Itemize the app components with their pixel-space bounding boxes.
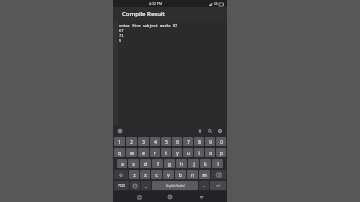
button[interactable]: 7 (183, 137, 193, 146)
button[interactable]: r (150, 148, 160, 157)
button[interactable]: 2 (126, 137, 137, 146)
button[interactable]: t (161, 148, 171, 157)
staticText: 5 (165, 139, 168, 145)
staticText: , (145, 183, 147, 188)
button[interactable]: Backspace (211, 170, 226, 179)
button[interactable]: 8 (194, 137, 204, 146)
staticText: Compile Result (122, 10, 165, 18)
button[interactable]: e (138, 148, 149, 157)
staticText: n (191, 172, 194, 178)
button[interactable]: 5 (161, 137, 171, 146)
staticText: English (India) (166, 184, 185, 188)
button[interactable]: 4 (150, 137, 160, 146)
staticText: w (130, 150, 134, 156)
button[interactable]: , (141, 181, 151, 190)
staticText: v (167, 172, 170, 178)
button[interactable]: Clipboard (117, 128, 123, 134)
button[interactable]: d (140, 159, 151, 168)
staticText: t (165, 150, 167, 156)
button[interactable]: Emoji (130, 181, 140, 190)
button[interactable]: f (152, 159, 163, 168)
staticText: 0 (220, 139, 223, 145)
button[interactable]: b (175, 170, 186, 179)
button[interactable]: w (126, 148, 137, 157)
staticText: d (144, 161, 147, 167)
button[interactable]: j (188, 159, 199, 168)
staticText: 5 (119, 38, 122, 43)
button[interactable]: 0 (216, 137, 226, 146)
button[interactable]: . (199, 181, 209, 190)
staticText: 4 (154, 139, 157, 145)
staticText: k (204, 161, 207, 167)
button[interactable]: Recent apps (134, 192, 144, 202)
staticText: q (118, 150, 121, 156)
button[interactable]: Back (196, 192, 206, 202)
button[interactable]: g (164, 159, 175, 168)
button[interactable]: a (117, 159, 127, 168)
staticText: 4:32 PM (149, 1, 163, 6)
staticText: r (154, 150, 156, 156)
button[interactable]: y (172, 148, 182, 157)
button[interactable]: Compile Result (113, 7, 227, 21)
staticText: 2 (130, 139, 133, 145)
staticText: e (142, 150, 145, 156)
button[interactable]: 9 (205, 137, 215, 146)
button[interactable]: l (212, 159, 223, 168)
staticText: ?123 (118, 184, 125, 188)
staticText: 8 (198, 139, 201, 145)
staticText: 3 (142, 139, 145, 145)
staticText: x (144, 172, 147, 178)
staticText: 9 (209, 139, 212, 145)
button[interactable]: 1 (114, 137, 125, 146)
button[interactable]: p (216, 148, 226, 157)
button[interactable]: Search (207, 128, 213, 134)
button[interactable]: s (128, 159, 139, 168)
button[interactable]: English (India) (152, 181, 198, 190)
staticText: a (121, 161, 124, 167)
button[interactable]: 3 (138, 137, 149, 146)
button[interactable]: k (200, 159, 211, 168)
button[interactable]: z (129, 170, 139, 179)
staticText: j (193, 161, 195, 167)
button[interactable]: Voice input (197, 128, 203, 134)
staticText: z (133, 172, 136, 178)
button[interactable]: m (199, 170, 210, 179)
staticText: enter five subject marks 87 (119, 23, 178, 28)
staticText: c (155, 172, 158, 178)
staticText: 67 (119, 28, 124, 33)
button[interactable]: Enter (210, 181, 226, 190)
button[interactable]: h (176, 159, 187, 168)
button[interactable]: u (183, 148, 193, 157)
staticText: m (202, 172, 207, 178)
button[interactable]: ?123 (114, 181, 129, 190)
staticText: 54 (214, 2, 218, 6)
button[interactable]: v (163, 170, 174, 179)
button[interactable]: Home (165, 192, 175, 202)
button[interactable]: i (194, 148, 204, 157)
button[interactable]: o (205, 148, 215, 157)
button[interactable]: Settings (217, 128, 223, 134)
staticText: g (168, 161, 171, 167)
button[interactable]: q (114, 148, 125, 157)
staticText: f (157, 161, 159, 167)
staticText: 1 (118, 139, 121, 145)
button[interactable]: 6 (172, 137, 182, 146)
staticText: i (198, 150, 200, 156)
button[interactable]: n (187, 170, 198, 179)
staticText: . (203, 183, 205, 188)
staticText: b (179, 172, 182, 178)
staticText: h (180, 161, 183, 167)
button[interactable]: Shift (114, 170, 128, 179)
staticText: s (132, 161, 135, 167)
staticText: y (176, 150, 179, 156)
staticText: o (209, 150, 212, 156)
staticText: p (220, 150, 223, 156)
staticText: u (187, 150, 190, 156)
staticText: 7 (187, 139, 190, 145)
button[interactable]: c (151, 170, 162, 179)
staticText: 6 (176, 139, 179, 145)
staticText: l (217, 161, 219, 167)
staticText: 71 (119, 33, 124, 38)
button[interactable]: x (140, 170, 150, 179)
